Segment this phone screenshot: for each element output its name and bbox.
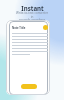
staticText: Write-to-text converter in seconds anywh…	[15, 11, 49, 21]
button[interactable]: Convert	[21, 84, 37, 89]
staticText: Note Title	[12, 26, 26, 30]
staticText: Instant	[21, 4, 44, 12]
